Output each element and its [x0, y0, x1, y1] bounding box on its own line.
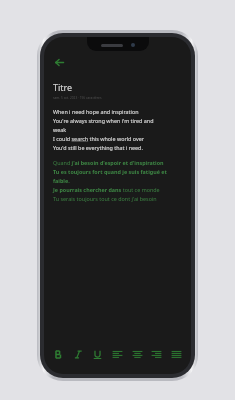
- staticText: sam. 5 oct. 2023 · 156 caractères: [53, 96, 102, 100]
- button[interactable]: Align left: [109, 344, 126, 364]
- staticText: When i need hope and inspiration You're …: [53, 108, 154, 151]
- button[interactable]: Bold: [50, 344, 67, 364]
- button[interactable]: Align right: [148, 344, 165, 364]
- staticText: Quand j'ai besoin d'espoir et d'inspirat…: [53, 159, 167, 202]
- button[interactable]: Justify: [168, 344, 185, 364]
- button[interactable]: Align center: [129, 344, 146, 364]
- staticText: Titre: [53, 81, 73, 93]
- button[interactable]: Underline: [89, 344, 106, 364]
- button[interactable]: Italic: [70, 344, 87, 364]
- button[interactable]: Back: [50, 53, 68, 71]
